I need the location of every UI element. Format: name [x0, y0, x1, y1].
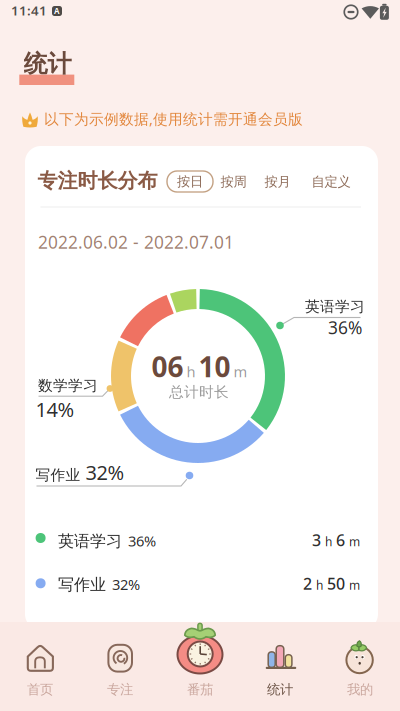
staticText: 2022.06.02 - 2022.07.01 — [38, 230, 234, 253]
staticText: 6 — [336, 529, 345, 551]
staticText: 自定义 — [311, 174, 350, 190]
staticText: 专注 — [107, 681, 133, 698]
button[interactable]: 首页 — [0, 622, 80, 711]
staticText: 英语学习 — [58, 531, 122, 551]
staticText: h — [186, 362, 195, 381]
button[interactable]: 按月 — [264, 174, 290, 190]
staticText: 写作业 — [58, 575, 106, 594]
staticText: 按周 — [220, 174, 246, 190]
staticText: 总计时长 — [169, 383, 229, 401]
staticText: 36% — [328, 316, 362, 339]
staticText: 32% — [112, 574, 140, 594]
staticText: h — [316, 577, 323, 593]
staticText: 英语学习 — [305, 297, 365, 315]
staticText: m — [349, 534, 360, 549]
staticText: 首页 — [27, 681, 53, 698]
button[interactable]: 番茄 — [160, 622, 240, 711]
staticText: 写作业 — [35, 466, 80, 484]
staticText: 我的 — [347, 681, 373, 698]
button[interactable]: 专注 — [80, 622, 160, 711]
staticText: 36% — [128, 531, 156, 550]
staticText: 32% — [85, 459, 124, 486]
button[interactable]: 按周 — [220, 174, 246, 190]
staticText: 数学学习 — [38, 377, 98, 395]
button[interactable]: 我的 — [320, 622, 400, 711]
staticText: 统计 — [267, 681, 293, 698]
staticText: 3 — [312, 529, 321, 551]
staticText: 按日 — [177, 173, 203, 190]
button[interactable]: 统计 — [240, 622, 320, 711]
staticText: 14% — [35, 396, 74, 423]
staticText: 50 — [327, 573, 345, 594]
button[interactable]: 自定义 — [311, 174, 350, 190]
staticText: 专注时长分布 — [37, 168, 157, 193]
staticText: 11:41 — [11, 1, 47, 19]
staticText: 按月 — [264, 174, 290, 190]
staticText: 2 — [303, 573, 312, 594]
staticText: 以下为示例数据,使用统计需开通会员版 — [44, 109, 303, 128]
staticText: A — [54, 6, 60, 16]
staticText: m — [349, 577, 360, 593]
staticText: 10 — [198, 348, 230, 385]
staticText: 统计 — [23, 49, 71, 78]
button[interactable]: 按日 — [167, 171, 213, 192]
staticText: m — [233, 362, 247, 381]
staticText: 06 — [151, 348, 183, 385]
staticText: 番茄 — [187, 681, 213, 698]
staticText: h — [325, 534, 332, 549]
